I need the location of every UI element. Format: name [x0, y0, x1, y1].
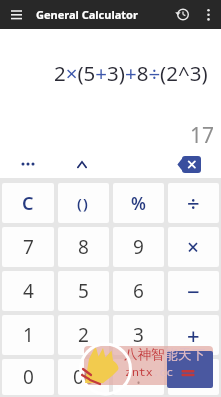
- staticText: 2: [78, 322, 89, 348]
- button[interactable]: C: [2, 183, 54, 223]
- button[interactable]: 9: [113, 227, 164, 267]
- staticText: .: [136, 364, 142, 390]
- button[interactable]: =: [168, 359, 219, 395]
- staticText: 3: [133, 322, 144, 348]
- staticText: 0: [23, 364, 34, 390]
- staticText: ÷: [187, 188, 200, 218]
- button[interactable]: 1: [2, 315, 54, 355]
- staticText: C: [22, 191, 34, 216]
- staticText: −: [187, 276, 200, 306]
- staticText: 17: [190, 121, 215, 150]
- staticText: zntx.cc: [125, 364, 174, 380]
- button[interactable]: 3: [113, 315, 164, 355]
- button[interactable]: 6: [113, 271, 164, 311]
- button[interactable]: +: [168, 315, 219, 355]
- staticText: %: [131, 192, 146, 215]
- button[interactable]: [56, 150, 111, 178]
- button[interactable]: ÷: [168, 183, 219, 223]
- staticText: 8: [78, 234, 89, 260]
- button[interactable]: 5: [58, 271, 109, 311]
- button[interactable]: [0, 150, 56, 178]
- staticText: 八神智能天下: [124, 346, 205, 363]
- button[interactable]: 00: [58, 359, 109, 395]
- button[interactable]: 7: [2, 227, 54, 267]
- staticText: 6: [133, 278, 144, 304]
- button[interactable]: 4: [2, 271, 54, 311]
- button[interactable]: %: [113, 183, 164, 223]
- button[interactable]: [175, 7, 190, 22]
- button[interactable]: (): [58, 183, 109, 223]
- staticText: 2×(5+3)+8÷(2^3): [54, 59, 208, 87]
- button[interactable]: ×: [168, 227, 219, 267]
- staticText: General Calculator: [36, 7, 138, 22]
- staticText: 9: [133, 234, 144, 260]
- staticText: 00: [73, 364, 95, 390]
- staticText: =: [187, 362, 200, 392]
- staticText: 7: [23, 234, 34, 260]
- staticText: 5: [78, 278, 89, 304]
- button[interactable]: 0: [2, 359, 54, 395]
- staticText: ×: [187, 233, 200, 262]
- staticText: 4: [23, 278, 34, 304]
- button[interactable]: [166, 150, 221, 178]
- button[interactable]: −: [168, 271, 219, 311]
- button[interactable]: 2: [58, 315, 109, 355]
- staticText: (): [77, 193, 90, 213]
- staticText: 1: [23, 322, 34, 348]
- button[interactable]: [206, 7, 211, 22]
- button[interactable]: 8: [58, 227, 109, 267]
- staticText: +: [187, 320, 200, 350]
- button[interactable]: [11, 10, 22, 20]
- button[interactable]: .: [113, 359, 164, 395]
